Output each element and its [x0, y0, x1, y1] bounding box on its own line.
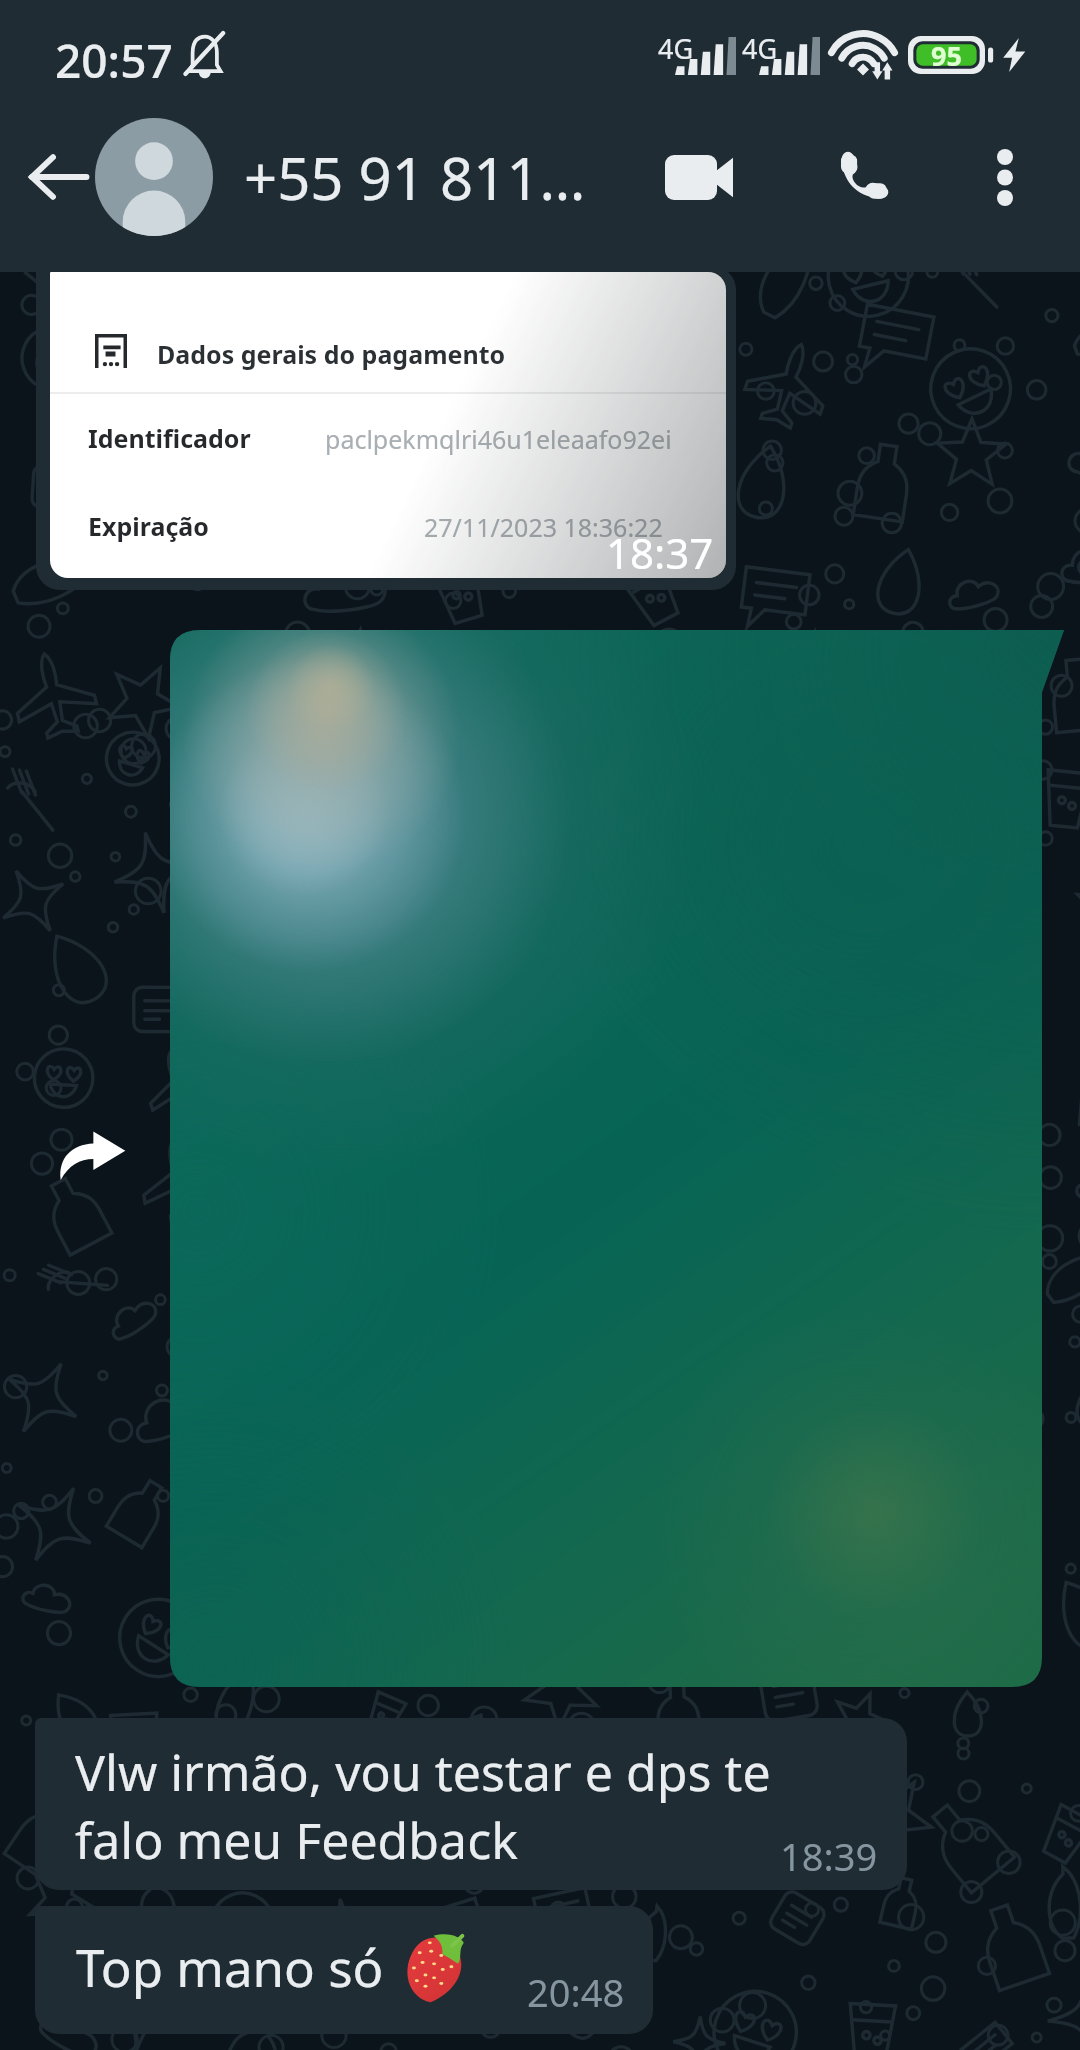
staticText: Top mano só	[76, 1932, 384, 2001]
staticText: 18:37	[606, 524, 714, 578]
button[interactable]: Top mano só	[35, 1906, 653, 2034]
staticText: Vlw irmão, vou testar e dps te falo meu …	[75, 1738, 771, 1873]
staticText: Expiração	[88, 509, 209, 543]
staticText: 20:48	[527, 1966, 625, 2018]
staticText: 20:57	[55, 29, 173, 92]
button[interactable]: Back	[14, 133, 102, 221]
staticText: 4G	[742, 30, 778, 67]
staticText: +55 91 811…	[244, 138, 586, 217]
button[interactable]: More options	[951, 123, 1059, 231]
button[interactable]: Video call	[645, 123, 753, 231]
button[interactable]: Contact avatar	[95, 118, 213, 236]
staticText: Identificador	[88, 421, 251, 455]
staticText: 18:39	[780, 1830, 878, 1882]
staticText: 95	[931, 37, 962, 74]
staticText: paclpekmqlri46u1eleaafo92ei	[325, 422, 672, 456]
button[interactable]: Voice call	[809, 123, 917, 231]
button[interactable]: Forwarded	[42, 1114, 142, 1198]
staticText: 27/11/2023 18:36:22	[424, 510, 663, 544]
button[interactable]: +55 91 811…	[244, 117, 624, 237]
button[interactable]: Dados gerais do pagamento	[36, 266, 736, 590]
staticText: Dados gerais do pagamento	[157, 337, 506, 371]
button[interactable]: Photo	[170, 630, 1064, 1687]
button[interactable]: Vlw irmão, vou testar e dps te falo meu …	[35, 1718, 907, 1890]
staticText: 4G	[658, 30, 694, 67]
